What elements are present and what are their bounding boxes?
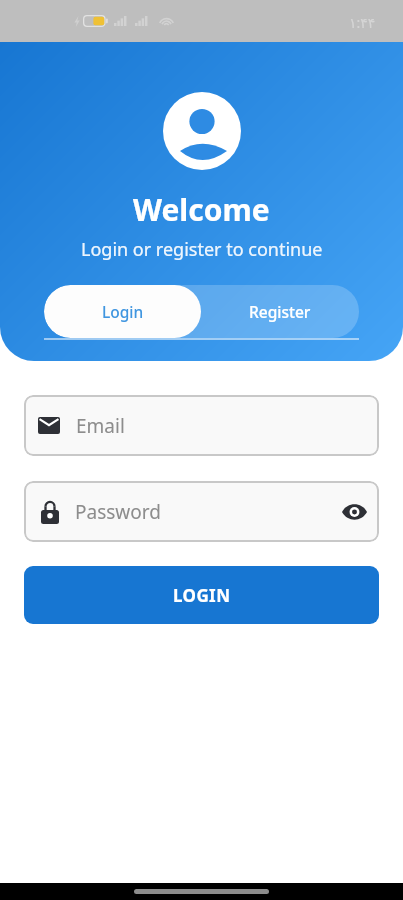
button[interactable]: LOGIN: [24, 566, 379, 624]
button[interactable]: Show password: [338, 496, 370, 528]
staticText: Login or register to continue: [81, 237, 323, 262]
button[interactable]: Email: [24, 395, 379, 456]
staticText: ۱:۴۴: [349, 13, 376, 32]
button[interactable]: Password: [24, 481, 379, 542]
staticText: Welcome: [133, 189, 270, 230]
button[interactable]: Register: [201, 285, 359, 338]
staticText: Register: [249, 301, 311, 322]
button[interactable]: Login: [44, 285, 201, 338]
staticText: Email: [76, 413, 125, 439]
staticText: LOGIN: [173, 584, 231, 607]
staticText: Password: [75, 499, 161, 525]
staticText: Login: [102, 301, 144, 322]
